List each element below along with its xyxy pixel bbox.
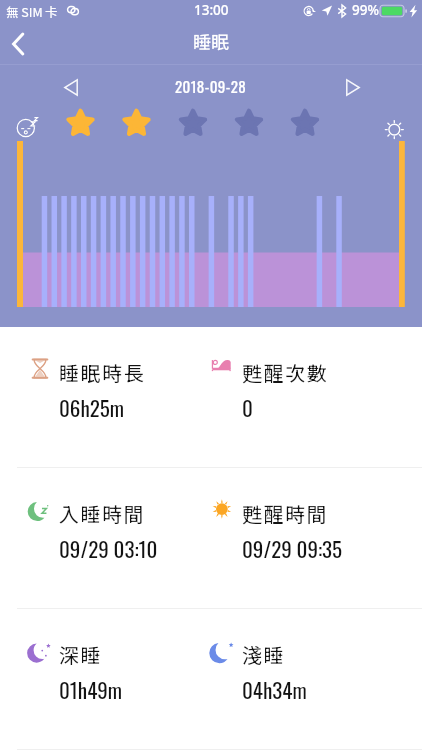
staticText: 13:00 xyxy=(194,1,229,19)
staticText: 01h49m xyxy=(59,674,123,705)
staticText: 09/29 09:35 xyxy=(242,533,343,564)
button[interactable]: Next day xyxy=(330,70,374,105)
button[interactable]: Back xyxy=(0,22,48,65)
staticText: 睡眠時長 xyxy=(59,358,146,387)
staticText: 甦醒次數 xyxy=(242,358,329,387)
staticText: 0 xyxy=(242,392,253,423)
staticText: 無 SIM 卡 xyxy=(6,2,58,20)
staticText: 2018-09-28 xyxy=(175,75,247,97)
staticText: 甦醒時間 xyxy=(242,499,329,528)
button[interactable]: 甦醒次數 xyxy=(200,327,390,467)
staticText: 99% xyxy=(352,1,379,19)
staticText: 睡眠 xyxy=(193,28,229,54)
staticText: 06h25m xyxy=(59,392,125,423)
staticText: 入睡時間 xyxy=(59,499,146,528)
button[interactable]: 深睡 xyxy=(17,609,207,749)
staticText: 04h34m xyxy=(242,674,307,705)
button[interactable]: 甦醒時間 xyxy=(200,468,390,608)
button[interactable]: Previous day xyxy=(48,70,92,105)
staticText: 深睡 xyxy=(59,640,103,669)
staticText: 淺睡 xyxy=(242,640,286,669)
staticText: 09/29 03:10 xyxy=(59,533,158,564)
button[interactable]: 入睡時間 xyxy=(17,468,207,608)
button[interactable]: 睡眠時長 xyxy=(17,327,207,467)
button[interactable]: 淺睡 xyxy=(200,609,390,749)
